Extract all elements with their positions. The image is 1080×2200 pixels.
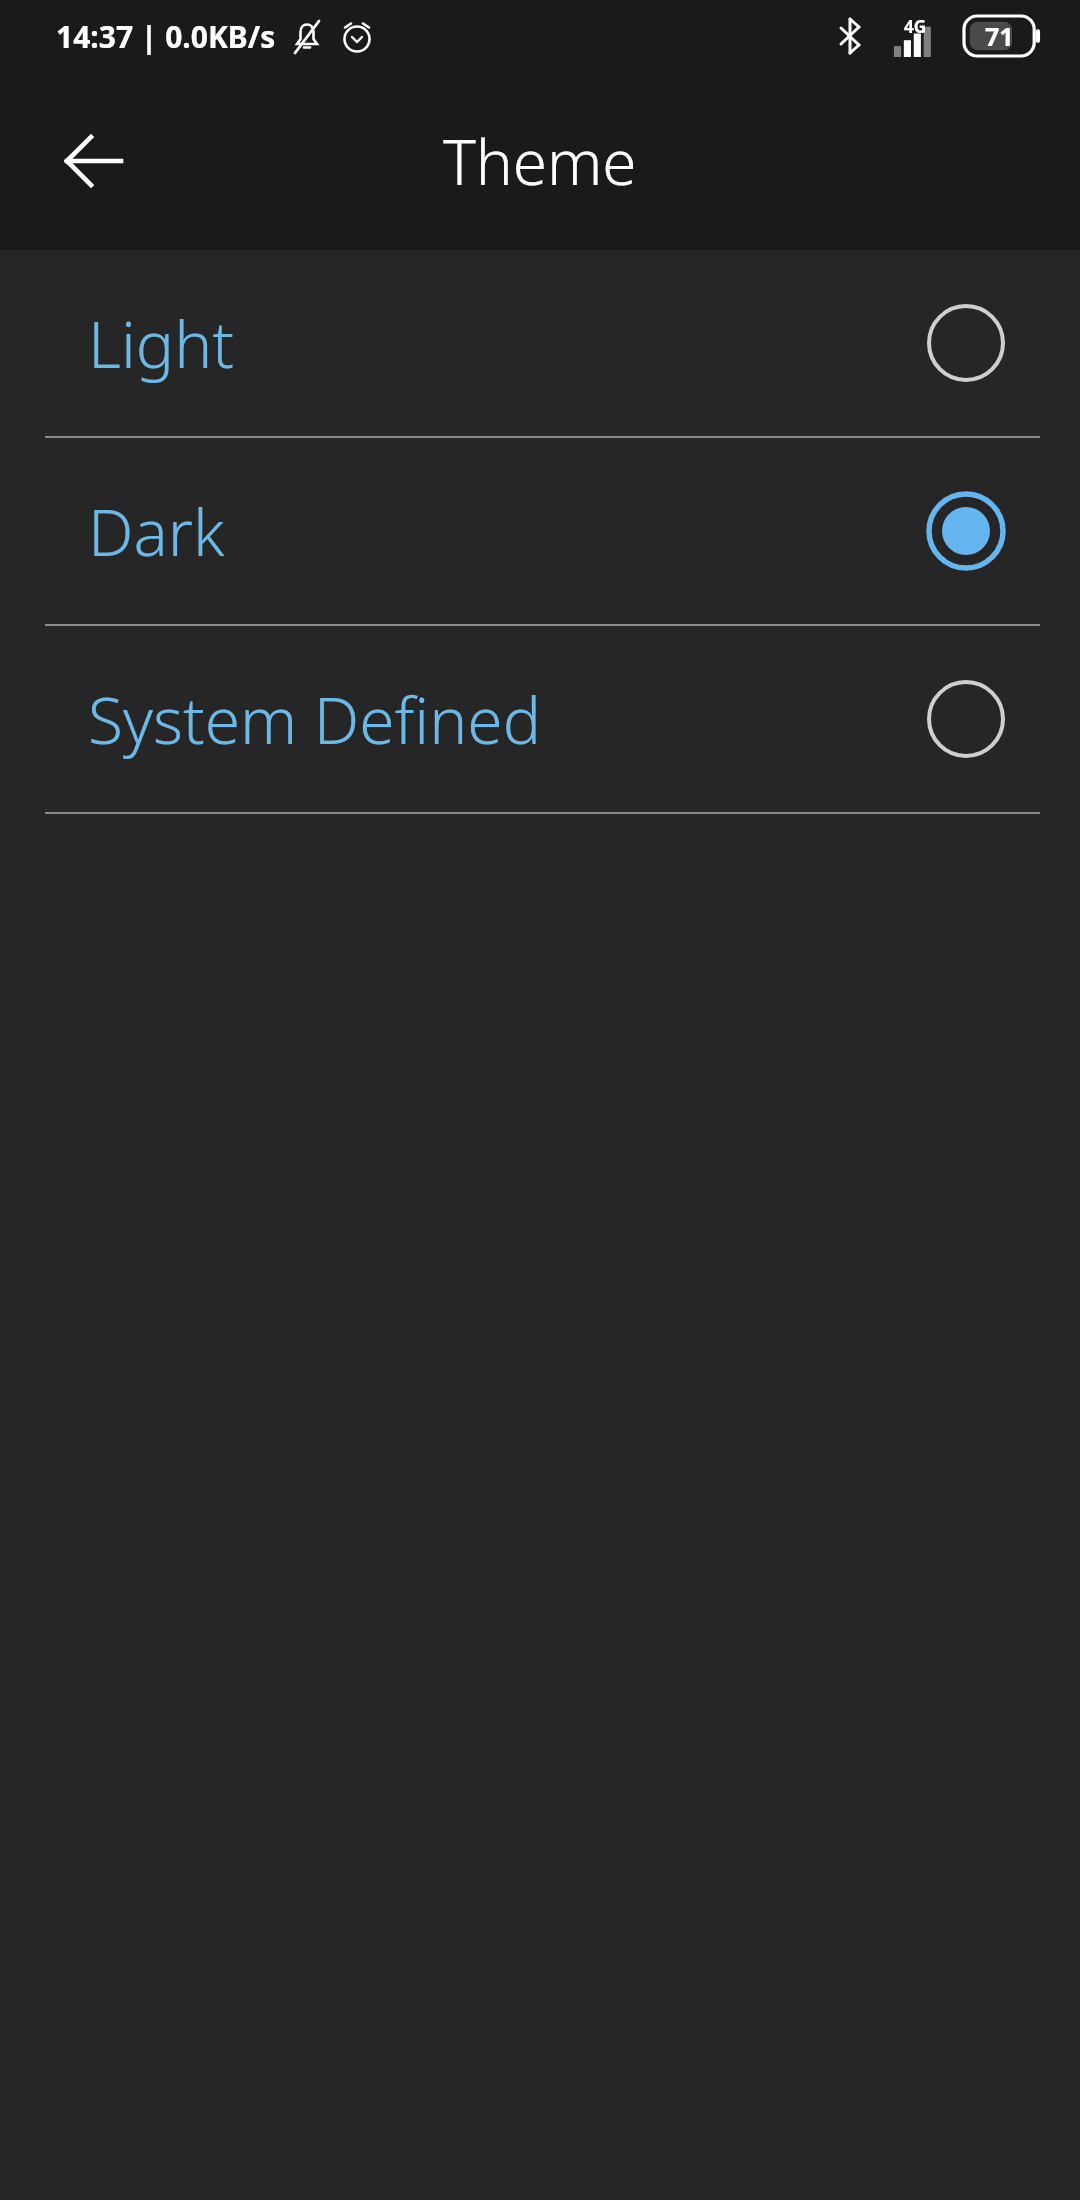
staticText: 14:37 | 0.0KB/s (56, 16, 276, 57)
staticText: System Defined (88, 676, 924, 763)
staticText: Dark (88, 488, 924, 575)
button[interactable]: Back (30, 97, 158, 225)
button[interactable]: System Defined (0, 626, 1080, 812)
staticText: 71 (985, 19, 1014, 53)
staticText: Theme (443, 119, 637, 203)
staticText: 4G (904, 15, 927, 38)
button[interactable]: Dark (0, 438, 1080, 624)
staticText: Light (88, 300, 924, 387)
button[interactable]: Light (0, 250, 1080, 436)
